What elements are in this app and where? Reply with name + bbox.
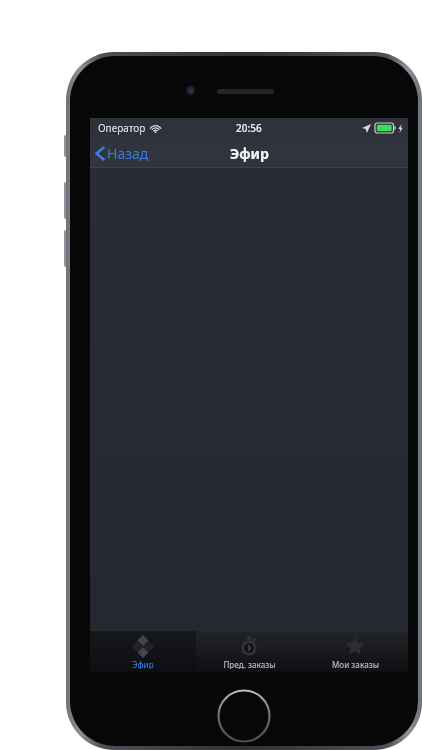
staticText: Эфир <box>230 144 269 163</box>
staticText: Эфир <box>132 659 154 669</box>
staticText: Пред. заказы <box>223 659 276 669</box>
other: Пред. заказы <box>237 634 261 658</box>
button[interactable]: Пред. заказы <box>196 631 302 672</box>
staticText: 20:56 <box>236 121 262 135</box>
other: Мои заказы <box>343 634 367 658</box>
button[interactable]: Эфир <box>90 631 196 672</box>
other: Эфир <box>131 634 155 658</box>
staticText: Назад <box>107 144 149 163</box>
button[interactable]: Назад <box>90 140 157 167</box>
staticText: Оператор <box>98 121 146 135</box>
button[interactable]: Мои заказы <box>302 631 408 672</box>
staticText: Мои заказы <box>332 659 379 669</box>
